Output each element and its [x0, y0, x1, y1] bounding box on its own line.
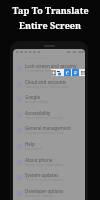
button[interactable]: Lock screen and security	[13, 60, 85, 76]
staticText: Accessibility	[25, 110, 51, 116]
staticText: Tap To Translate	[12, 4, 89, 16]
staticText: Cloud and accounts	[25, 79, 67, 85]
staticText: Samsung Cloud, Backup and	[25, 85, 68, 89]
staticText: Status, Legal information	[25, 163, 63, 167]
staticText: Help	[25, 141, 35, 147]
staticText: Lock screen and security	[25, 63, 77, 69]
button[interactable]: Source language	[51, 70, 56, 76]
button[interactable]: Google	[13, 91, 85, 107]
button[interactable]: General management	[13, 122, 85, 138]
button[interactable]: Accessibility	[13, 107, 85, 123]
staticText: Get started	[25, 147, 42, 151]
button[interactable]: Help	[13, 138, 85, 154]
staticText: Vision, Hearing, Dexterity	[25, 116, 63, 120]
button[interactable]: Copy text	[64, 69, 71, 76]
button[interactable]: Cloud and accounts	[13, 76, 85, 92]
button[interactable]: More options	[81, 70, 85, 75]
staticText: System updates	[25, 172, 59, 178]
staticText: Entire Screen	[19, 19, 81, 31]
staticText: Developer settings	[25, 194, 54, 198]
staticText: Language and input, Date	[25, 131, 64, 135]
button[interactable]: About phone	[13, 154, 85, 170]
staticText: General management	[25, 125, 71, 131]
staticText: Fingerprints, Secure Folder	[25, 69, 66, 73]
staticText: About phone	[25, 157, 53, 163]
staticText: Google settings	[25, 100, 49, 104]
staticText: Developer options	[25, 188, 64, 194]
button[interactable]: Swap languages	[57, 70, 61, 76]
button[interactable]: Developer options	[13, 185, 85, 200]
button[interactable]: Share text	[72, 69, 79, 76]
staticText: Google	[25, 94, 40, 100]
staticText: Check for system updates	[25, 178, 64, 182]
button[interactable]: System updates	[13, 169, 85, 185]
